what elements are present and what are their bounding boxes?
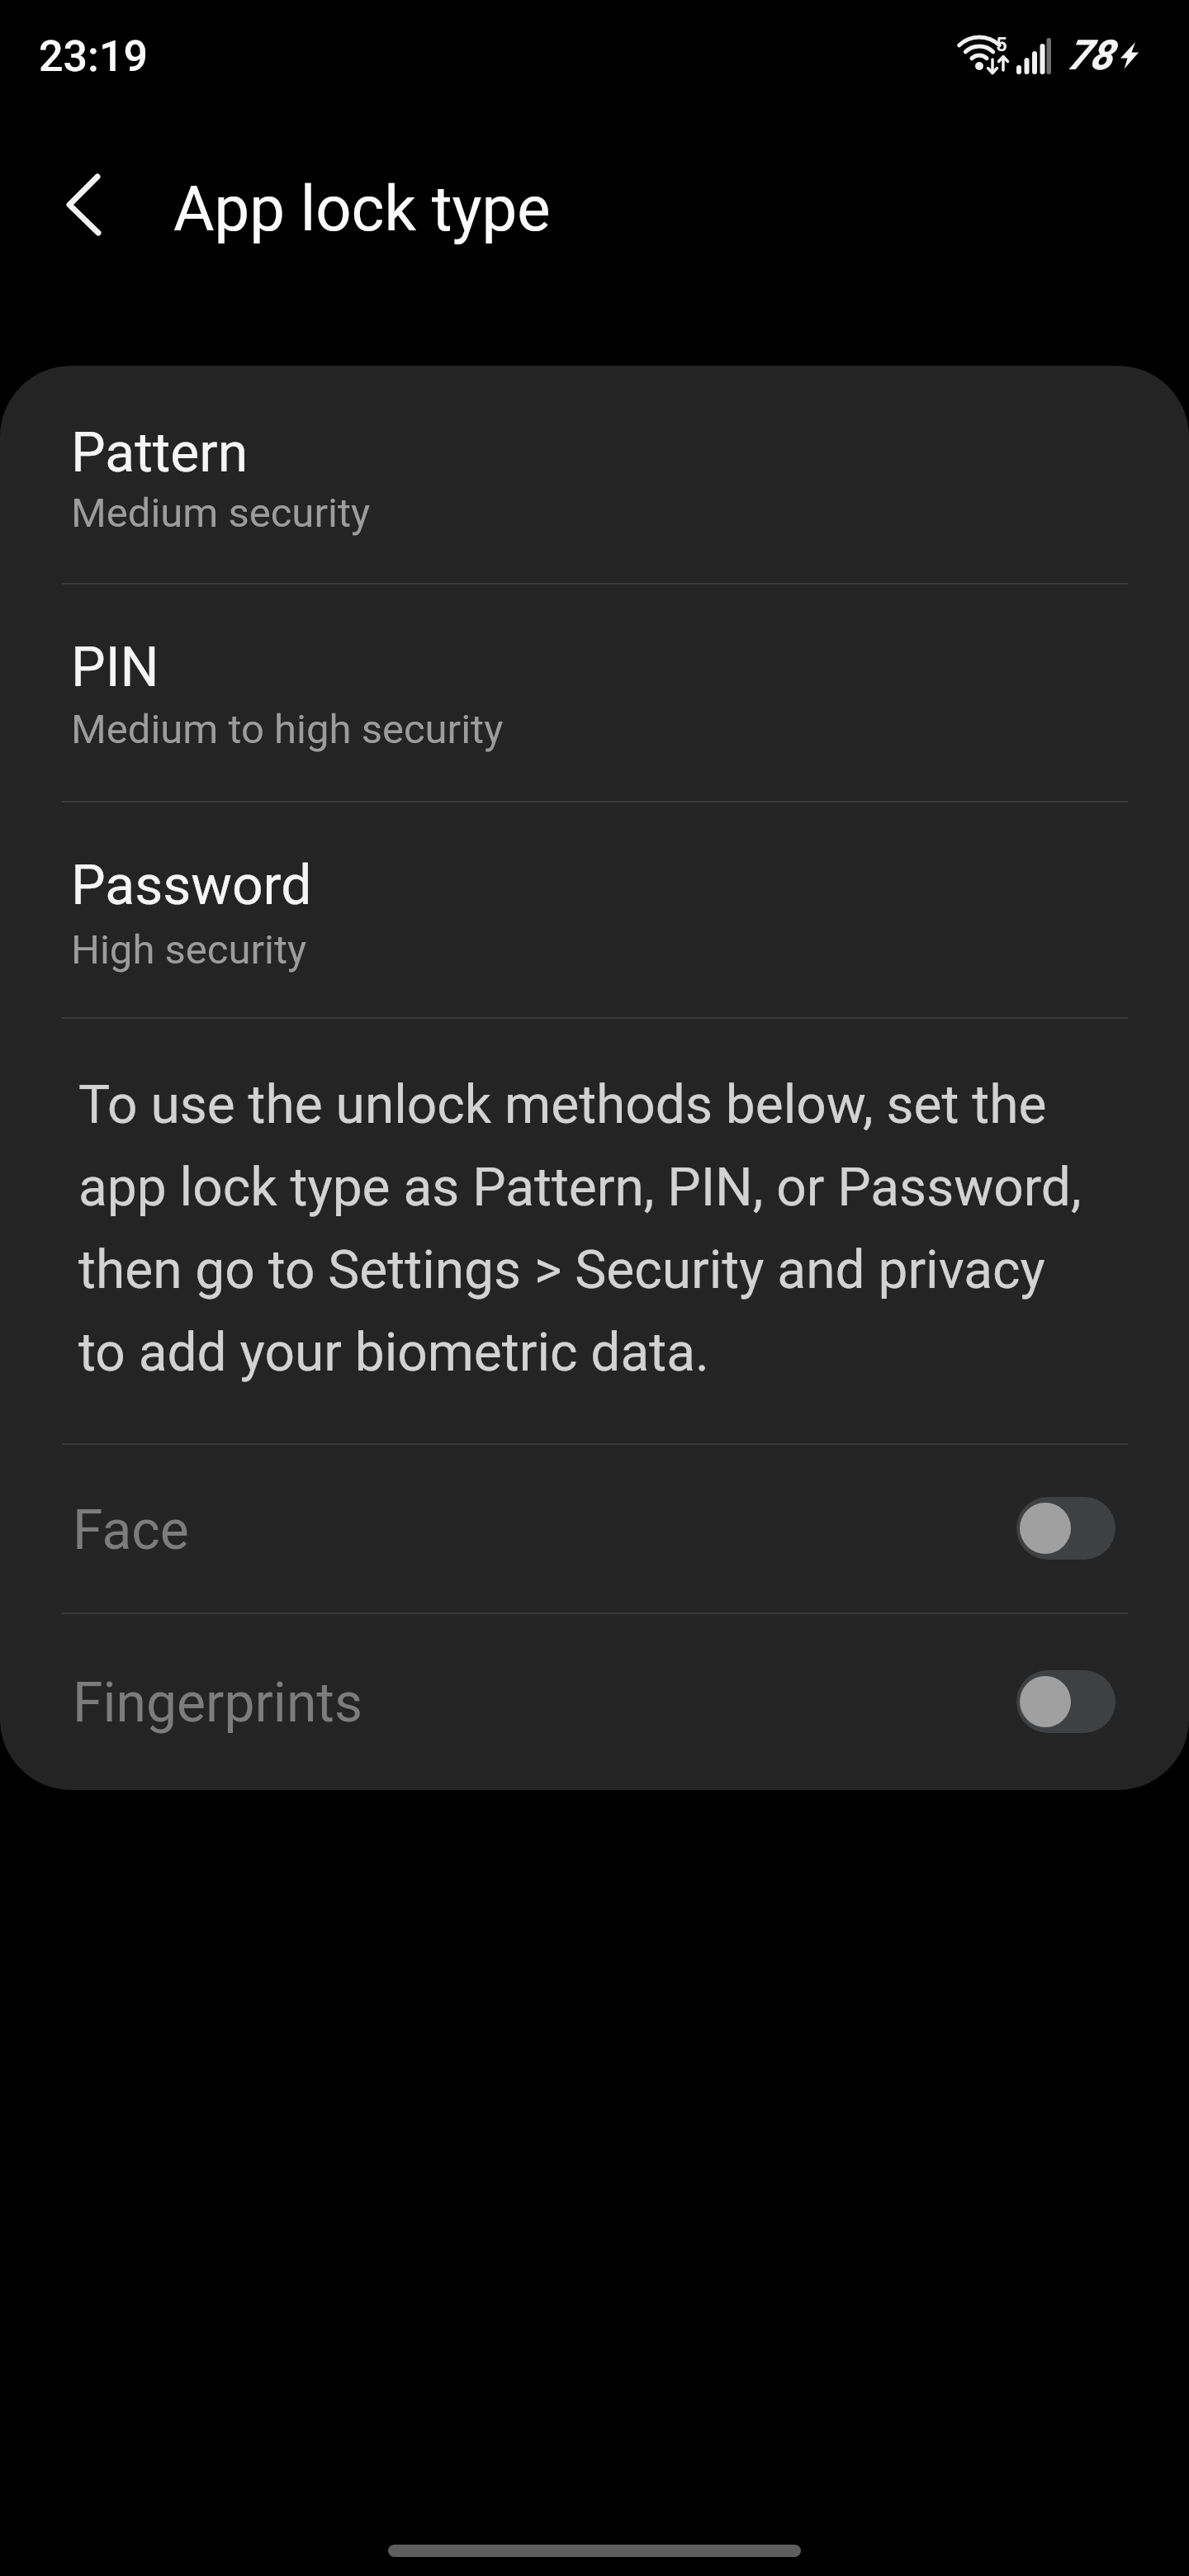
- staticText: App lock type: [173, 172, 551, 245]
- button[interactable]: Face: [0, 1443, 1189, 1612]
- button[interactable]: Fingerprints: [0, 1612, 1189, 1790]
- button[interactable]: Pattern: [0, 366, 1189, 583]
- button[interactable]: [1016, 1497, 1116, 1560]
- button[interactable]: [1016, 1670, 1116, 1733]
- staticText: Password: [71, 854, 312, 917]
- staticText: Medium security: [71, 490, 371, 537]
- button[interactable]: [33, 160, 124, 251]
- staticText: Pattern: [71, 421, 249, 485]
- staticText: Face: [73, 1499, 189, 1562]
- staticText: Fingerprints: [73, 1671, 362, 1735]
- staticText: 5: [996, 33, 1007, 56]
- staticText: 23:19: [39, 31, 149, 82]
- button[interactable]: PIN: [0, 583, 1189, 801]
- staticText: Medium to high security: [71, 706, 504, 753]
- staticText: 78: [1067, 31, 1113, 80]
- button[interactable]: Password: [0, 801, 1189, 1017]
- staticText: High security: [71, 926, 307, 973]
- staticText: To use the unlock methods below, set the…: [78, 1074, 1082, 1384]
- staticText: PIN: [71, 636, 159, 699]
